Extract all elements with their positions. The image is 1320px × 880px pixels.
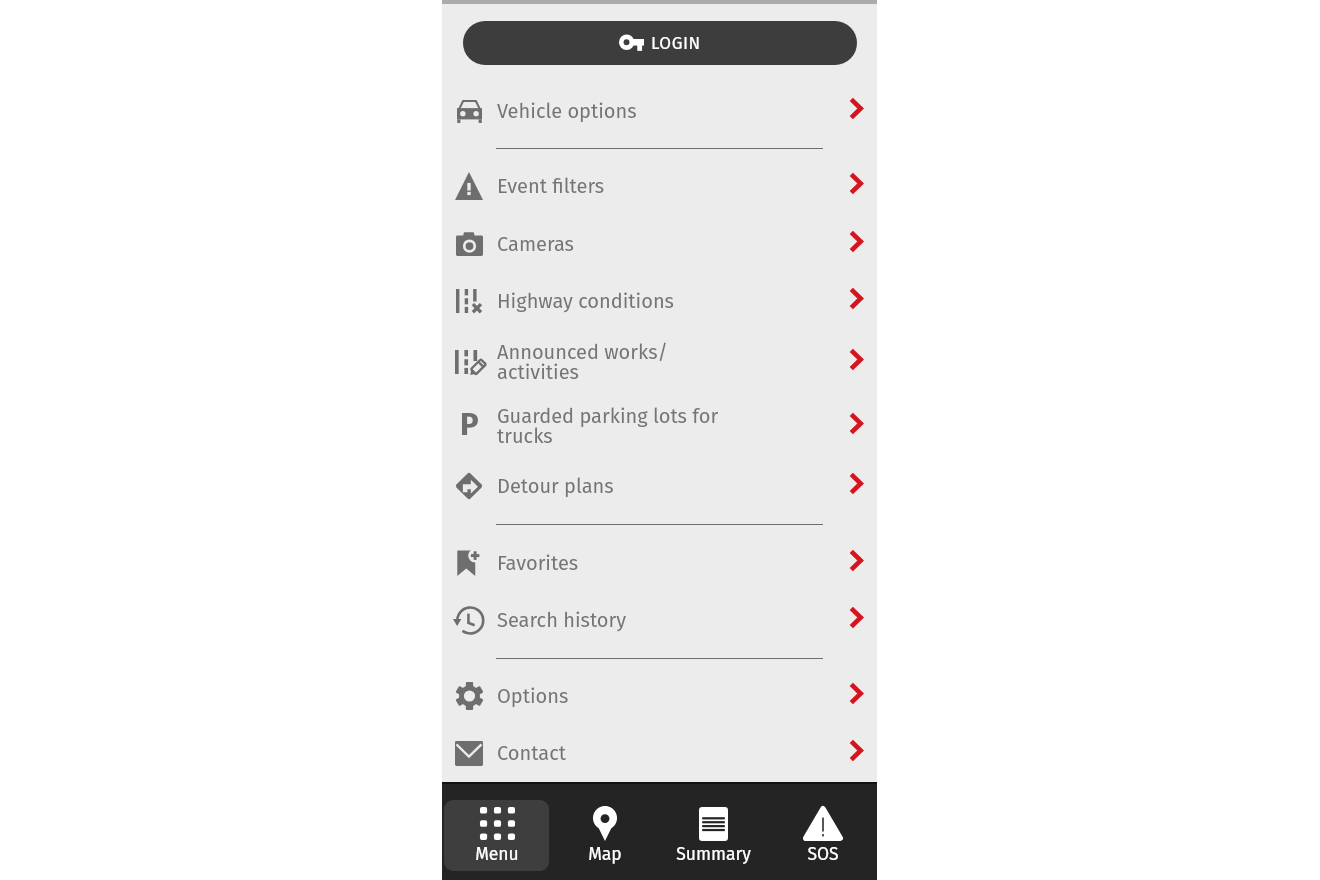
- button[interactable]: Announced works/activities: [442, 335, 877, 389]
- staticText: Contact: [497, 741, 566, 765]
- button[interactable]: Contact: [442, 726, 877, 780]
- button[interactable]: Options: [442, 669, 877, 723]
- staticText: Cameras: [497, 232, 574, 256]
- staticText: Favorites: [497, 551, 579, 575]
- button[interactable]: Vehicle options: [442, 84, 877, 138]
- staticText: Vehicle options: [497, 99, 637, 123]
- button[interactable]: Detour plans: [442, 459, 877, 513]
- button[interactable]: Highway conditions: [442, 274, 877, 328]
- staticText: Summary: [676, 844, 751, 865]
- staticText: Search history: [497, 608, 627, 632]
- button[interactable]: Summary: [659, 784, 768, 880]
- button[interactable]: Login: [463, 21, 857, 65]
- staticText: Menu: [475, 844, 519, 865]
- button[interactable]: Favorites: [442, 536, 877, 590]
- button[interactable]: Cameras: [442, 217, 877, 271]
- staticText: Detour plans: [497, 474, 614, 498]
- button[interactable]: Search history: [442, 593, 877, 647]
- staticText: Guarded parking lots for trucks: [497, 404, 719, 449]
- button[interactable]: Event filters: [442, 159, 877, 213]
- staticText: Highway conditions: [497, 289, 674, 313]
- button[interactable]: Map: [550, 784, 659, 880]
- button[interactable]: SOS: [768, 784, 877, 880]
- staticText: Map: [588, 844, 622, 865]
- staticText: Event filters: [497, 174, 605, 198]
- button[interactable]: Guarded parking lots fortrucks: [442, 399, 877, 453]
- button[interactable]: Menu: [442, 784, 550, 880]
- staticText: SOS: [807, 844, 839, 865]
- staticText: Announced works/ activities: [497, 340, 668, 385]
- staticText: Options: [497, 684, 569, 708]
- staticText: LOGIN: [651, 33, 701, 53]
- staticText: P: [460, 406, 479, 443]
